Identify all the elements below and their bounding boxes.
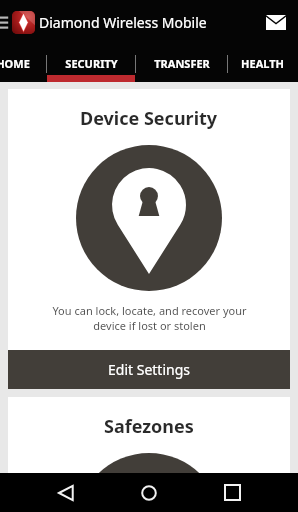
staticText: SECURITY: [65, 56, 118, 71]
button[interactable]: Home: [127, 473, 171, 512]
staticText: Edit Settings: [108, 360, 190, 379]
button[interactable]: SECURITY: [47, 45, 135, 82]
button[interactable]: TRANSFER: [136, 45, 227, 82]
staticText: Diamond Wireless Mobile: [39, 13, 207, 32]
button[interactable]: Back: [44, 473, 88, 512]
button[interactable]: Messages: [255, 0, 297, 45]
button[interactable]: HEALTH: [228, 45, 296, 82]
button[interactable]: HOME: [0, 45, 46, 82]
staticText: Device Security: [80, 106, 218, 131]
staticText: Safezones: [104, 414, 194, 439]
button[interactable]: Menu: [0, 0, 11, 45]
staticText: HOME: [0, 56, 30, 71]
staticText: HEALTH: [241, 56, 284, 71]
button[interactable]: Edit Settings: [8, 350, 290, 389]
button[interactable]: Recent apps: [210, 473, 254, 512]
staticText: You can lock, locate, and recover your d…: [52, 303, 247, 333]
staticText: TRANSFER: [154, 56, 210, 71]
